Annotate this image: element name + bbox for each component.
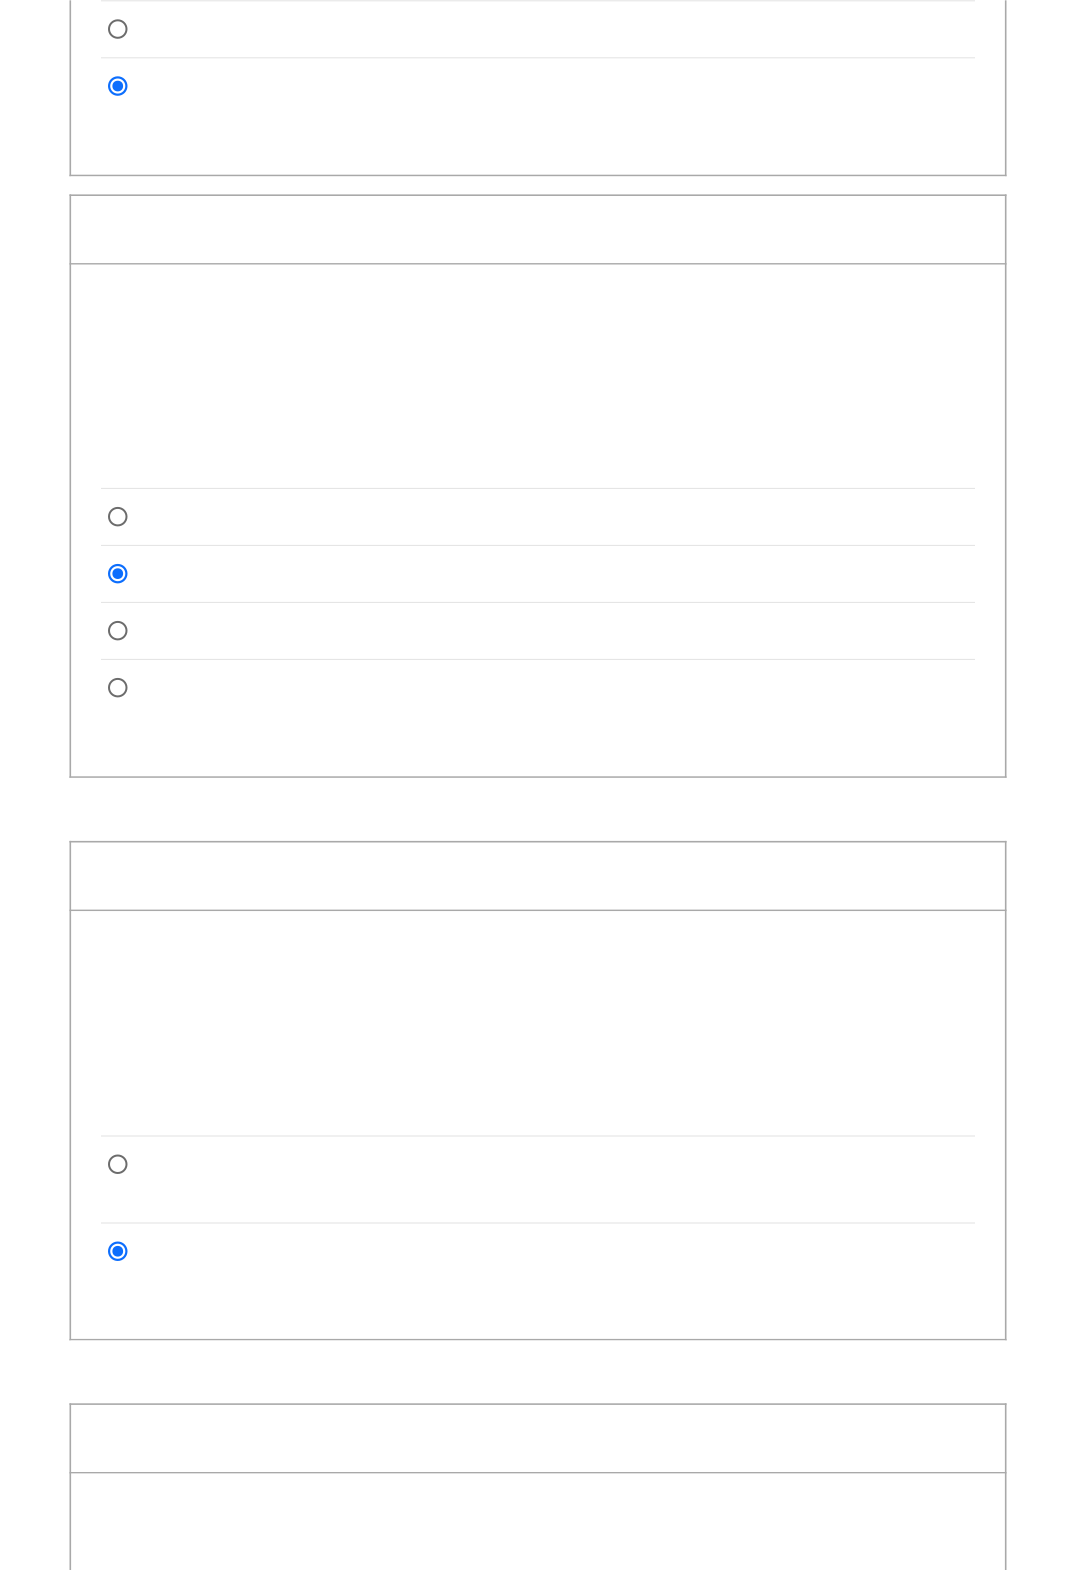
button[interactable]: Answer choice: [101, 659, 975, 778]
button[interactable]: Selected answer: [101, 1222, 975, 1340]
button[interactable]: Answer choice: [101, 1135, 975, 1222]
button[interactable]: Selected answer: [101, 57, 975, 176]
button[interactable]: Answer choice: [101, 0, 975, 57]
button[interactable]: Answer choice: [101, 602, 975, 659]
button[interactable]: Selected answer: [101, 545, 975, 602]
button[interactable]: Answer choice: [101, 488, 975, 545]
